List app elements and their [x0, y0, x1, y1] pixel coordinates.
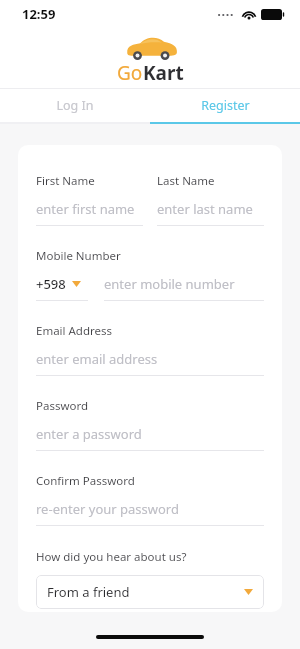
staticText: First Name — [36, 173, 95, 189]
staticText: enter email address — [36, 350, 158, 368]
staticText: Mobile Number — [36, 248, 121, 264]
staticText: Email Address — [36, 323, 113, 339]
button[interactable]: enter mobile number — [104, 275, 264, 301]
staticText: Log In — [56, 97, 94, 114]
button[interactable]: Password — [36, 398, 264, 451]
button[interactable]: First Name — [36, 173, 143, 226]
staticText: enter first name — [36, 200, 135, 218]
staticText: How did you hear about us? — [36, 549, 187, 565]
staticText: Register — [201, 97, 250, 114]
staticText: enter mobile number — [104, 275, 235, 293]
button[interactable]: Log In — [0, 89, 150, 122]
staticText: Confirm Password — [36, 473, 135, 489]
staticText: +598 — [36, 275, 66, 293]
staticText: From a friend — [47, 583, 130, 601]
button[interactable]: Confirm Password — [36, 473, 264, 526]
staticText: enter last name — [157, 200, 253, 218]
staticText: Last Name — [157, 173, 215, 189]
button[interactable]: Last Name — [157, 173, 264, 226]
button[interactable]: Select country code — [36, 275, 88, 301]
button[interactable]: Email Address — [36, 323, 264, 376]
button[interactable]: Register — [150, 89, 300, 122]
staticText: Kart — [143, 60, 184, 86]
staticText: enter a password — [36, 425, 142, 443]
staticText: Password — [36, 398, 89, 414]
staticText: Go — [117, 60, 143, 86]
staticText: 12:59 — [22, 5, 56, 23]
staticText: re-enter your password — [36, 500, 179, 518]
button[interactable]: From a friend — [36, 575, 264, 609]
